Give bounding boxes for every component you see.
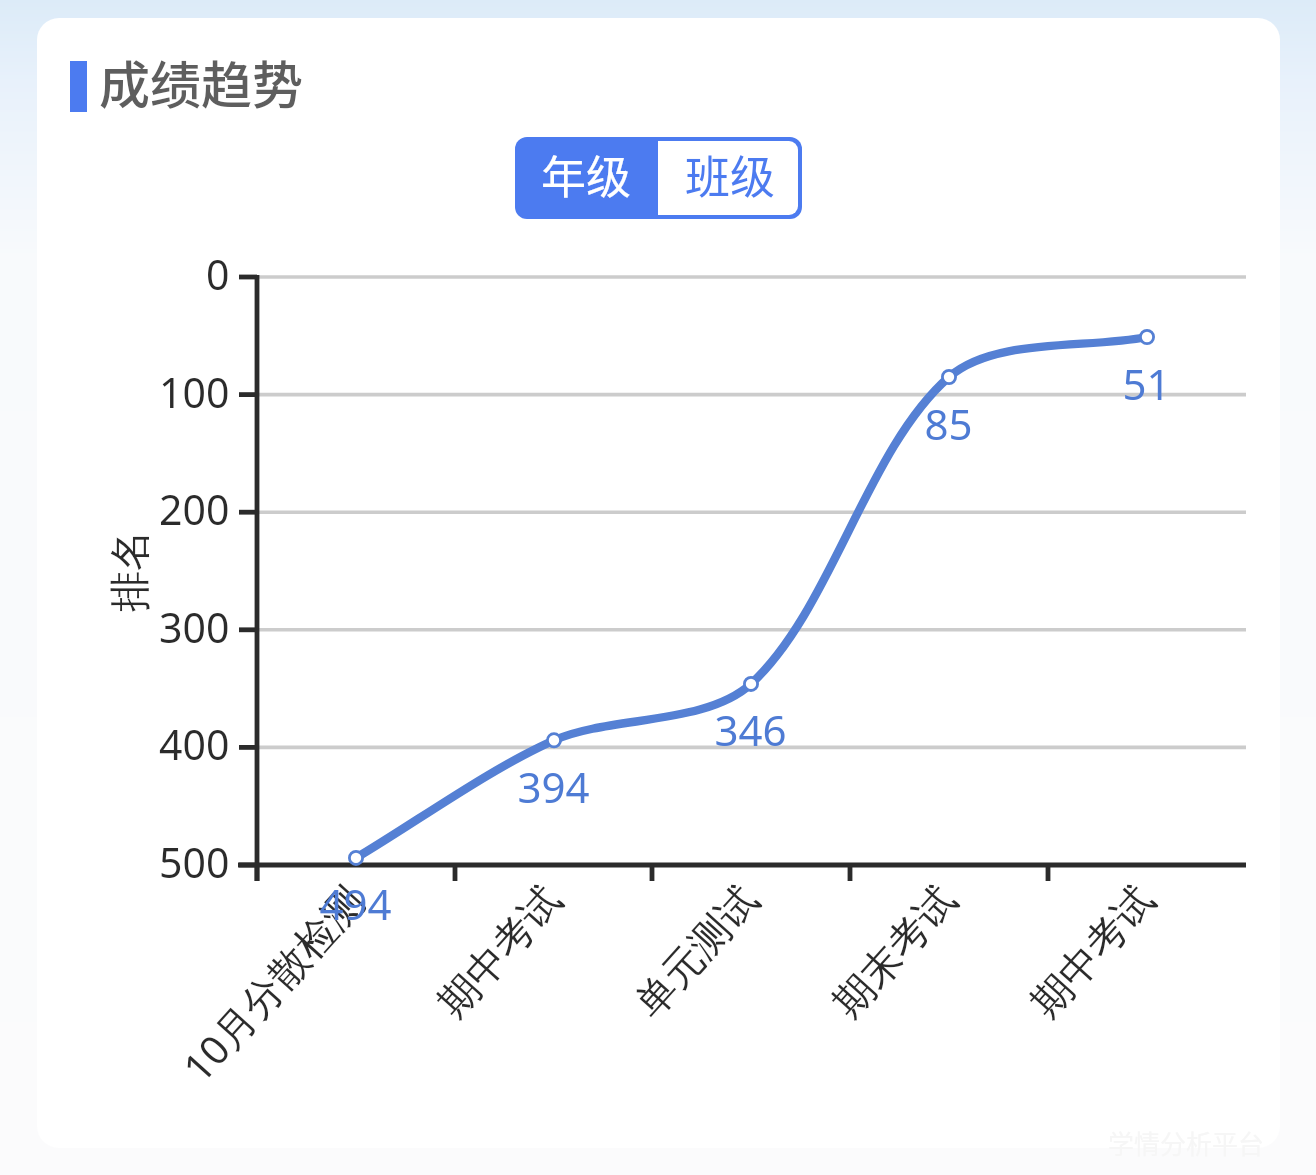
staticText: 成绩趋势 xyxy=(99,45,304,119)
button[interactable]: 年级 xyxy=(515,137,658,219)
button[interactable]: 班级 xyxy=(658,137,802,219)
staticText: 年级 xyxy=(541,142,632,207)
staticText: 班级 xyxy=(685,142,776,207)
